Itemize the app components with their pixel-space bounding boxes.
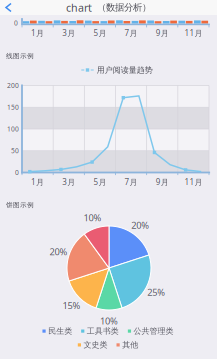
- staticText: 50: [11, 146, 19, 155]
- staticText: 饼图示例: [6, 201, 34, 209]
- staticText: 1月: [31, 28, 44, 38]
- button[interactable]: Back: [0, 0, 19, 15]
- staticText: 9月: [156, 28, 169, 38]
- staticText: （数据分析）: [97, 2, 151, 13]
- staticText: 10%: [100, 315, 118, 327]
- staticText: 用户阅读量趋势: [97, 65, 153, 75]
- staticText: 20%: [50, 245, 68, 258]
- staticText: 线图示例: [6, 52, 34, 60]
- staticText: 0: [14, 19, 18, 27]
- staticText: 11月: [184, 28, 202, 38]
- staticText: 7月: [125, 28, 138, 38]
- staticText: chart: [66, 0, 92, 15]
- staticText: 10%: [84, 211, 102, 224]
- staticText: 15%: [62, 299, 80, 312]
- staticText: 0: [15, 168, 19, 177]
- staticText: 150: [7, 103, 19, 112]
- staticText: 25%: [147, 286, 165, 298]
- staticText: 3月: [62, 177, 75, 187]
- staticText: 100: [7, 125, 19, 133]
- staticText: 文史类: [83, 340, 107, 350]
- staticText: 9月: [156, 177, 169, 187]
- staticText: 民生类: [48, 326, 72, 336]
- staticText: 其他: [122, 340, 138, 350]
- staticText: 公共管理类: [133, 326, 173, 336]
- staticText: 1月: [31, 177, 44, 187]
- staticText: 5月: [93, 28, 106, 38]
- staticText: 5月: [93, 177, 106, 187]
- staticText: 工具书类: [87, 326, 119, 336]
- staticText: 20%: [131, 219, 149, 231]
- staticText: 3月: [62, 28, 75, 38]
- staticText: 200: [7, 81, 19, 90]
- staticText: 7月: [125, 177, 138, 187]
- staticText: 11月: [184, 177, 202, 187]
